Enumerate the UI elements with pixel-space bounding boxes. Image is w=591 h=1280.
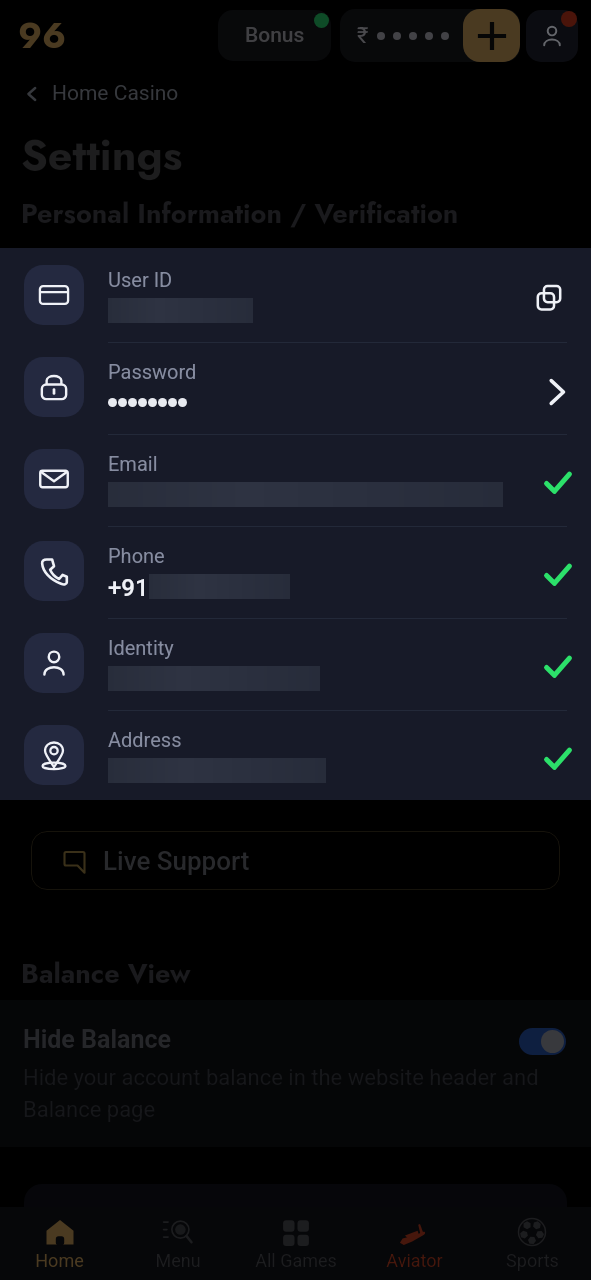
button[interactable]: Hide Balance [0,1000,591,1147]
staticText: +91 [108,574,149,599]
staticText: Bonus [245,23,305,48]
staticText: Hide Balance [23,1025,171,1054]
staticText: ₹ [357,23,369,49]
staticText: Phone [108,544,165,567]
button[interactable]: Password [0,340,591,432]
staticText: Settings [21,124,183,186]
staticText: Personal Information / Verification [21,194,459,233]
staticText: Log Out [255,1206,336,1233]
staticText: Address [108,728,182,751]
button[interactable]: All Games [237,1207,355,1280]
staticText: Email [108,452,158,475]
staticText: Password [108,360,197,383]
button[interactable]: ₹ [340,9,520,62]
button[interactable]: Phone [0,524,591,616]
staticText: 96 [18,9,67,61]
staticText: Sports [506,1250,559,1271]
button[interactable]: Email [0,432,591,524]
staticText: Identity [108,636,174,659]
staticText: Aviator [386,1250,443,1271]
staticText: Live Support [103,846,250,876]
staticText: Home Casino [52,81,179,106]
button[interactable]: Log Out [24,1184,567,1280]
button[interactable]: Address [0,708,591,800]
button[interactable]: Copy User ID [529,278,569,318]
button[interactable]: Identity [0,616,591,708]
button[interactable]: Deposit [463,9,520,62]
staticText: Home [35,1250,84,1271]
staticText: Balance View [21,954,191,993]
button[interactable]: Menu [119,1207,237,1280]
button[interactable]: Profile [526,10,578,62]
staticText: Menu [155,1250,201,1271]
button[interactable]: Bonus [218,10,331,61]
button[interactable]: Home Casino [22,81,179,106]
button[interactable]: Live Support [31,831,560,890]
button[interactable]: Hide balance toggle [519,1028,566,1055]
button[interactable]: User ID [0,248,591,340]
button[interactable]: Aviator [355,1207,473,1280]
staticText: Hide your account balance in the website… [23,1065,568,1122]
button[interactable]: Sports [473,1207,591,1280]
staticText: User ID [108,268,173,291]
staticText: All Games [255,1250,337,1271]
button[interactable]: Home [0,1207,119,1280]
button[interactable]: Change password [537,372,577,412]
